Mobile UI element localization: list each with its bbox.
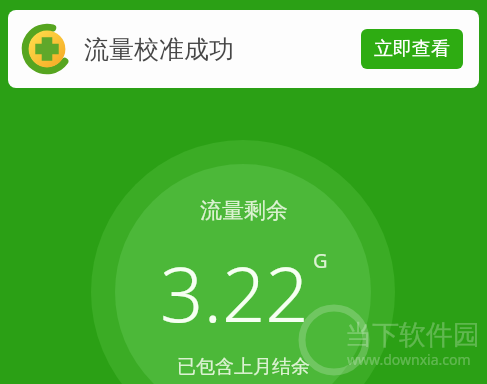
other: 360 security logo bbox=[24, 26, 70, 72]
staticText: www.downxia.com bbox=[347, 350, 471, 369]
staticText: 立即查看 bbox=[374, 37, 450, 61]
button[interactable]: 360 security logo bbox=[8, 10, 479, 88]
staticText: 已包含上月结余 bbox=[177, 355, 310, 379]
staticText: 流量剩余 bbox=[200, 197, 288, 225]
staticText: 流量校准成功 bbox=[84, 34, 234, 65]
button[interactable]: 立即查看 bbox=[361, 29, 463, 69]
staticText: 3.22 bbox=[160, 241, 309, 345]
staticText: 当下软件园 bbox=[345, 318, 480, 352]
staticText: G bbox=[313, 247, 328, 274]
